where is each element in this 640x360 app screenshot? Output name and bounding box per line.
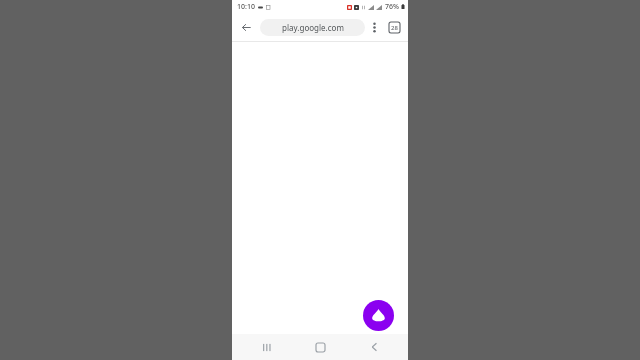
staticText: 28 (391, 24, 398, 32)
staticText: 10:10 (237, 2, 255, 12)
button[interactable]: More options (365, 14, 383, 41)
staticText: play.google.com (282, 22, 344, 33)
button[interactable]: Recent apps (246, 334, 286, 360)
button[interactable]: Back (354, 334, 394, 360)
button[interactable]: Home (300, 334, 340, 360)
staticText: 76% (385, 2, 399, 12)
button[interactable]: Tabs, 28 open (383, 14, 406, 41)
button[interactable]: Back (232, 14, 260, 41)
button[interactable]: play.google.com (260, 19, 365, 36)
button[interactable]: Assistant (363, 300, 394, 331)
